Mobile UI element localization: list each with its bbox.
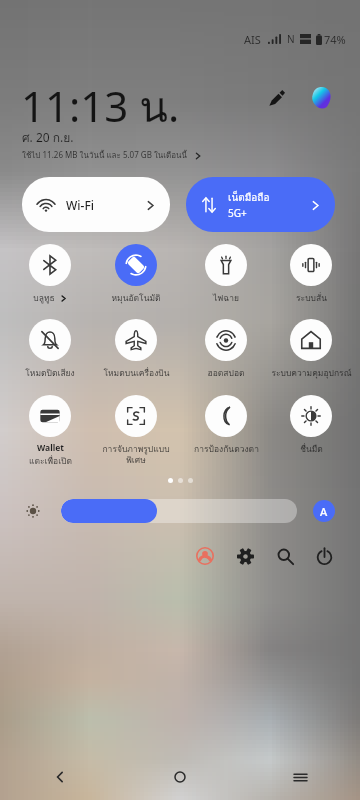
button[interactable]: เน็ตมือถือ	[186, 177, 335, 232]
staticText: AIS	[244, 32, 261, 47]
button[interactable]: A	[313, 500, 335, 522]
button[interactable]: Profile	[191, 542, 219, 570]
button[interactable]: Settings	[231, 542, 259, 570]
staticText: หมุนอัตโนมัติ	[111, 291, 161, 305]
button[interactable]	[271, 395, 351, 453]
button[interactable]	[10, 319, 90, 377]
button[interactable]: Recents	[240, 757, 360, 797]
staticText: N	[287, 32, 295, 46]
button[interactable]	[10, 244, 90, 302]
button[interactable]	[271, 244, 351, 302]
button[interactable]	[186, 244, 266, 302]
button[interactable]: Edit	[264, 86, 288, 110]
staticText: บลูทูธ	[33, 291, 55, 305]
staticText: ระบบสั่น	[296, 291, 327, 305]
staticText: เน็ตมือถือ	[228, 190, 270, 206]
button[interactable]: Home	[120, 757, 240, 797]
button[interactable]	[96, 244, 176, 302]
button[interactable]: Search	[271, 542, 299, 570]
staticText: โหมดบนเครื่องบิน	[103, 366, 170, 380]
staticText: ศ. 20 ก.ย.	[22, 128, 74, 147]
staticText: Wi-Fi	[66, 197, 94, 213]
button[interactable]	[61, 499, 297, 523]
button[interactable]: Wi-Fi	[22, 177, 170, 232]
staticText: ฮอตสปอต	[207, 366, 245, 380]
button[interactable]	[186, 395, 266, 453]
staticText: 74%	[324, 32, 346, 47]
staticText: A	[320, 504, 328, 519]
staticText: โหมดปิดเสียง	[25, 366, 75, 380]
staticText: 11:13 น.	[21, 74, 180, 141]
staticText: การจับภาพรูปแบบ พิเศษ	[102, 442, 170, 467]
button[interactable]	[271, 319, 351, 377]
staticText: แตะเพื่อเปิด	[29, 454, 72, 468]
staticText: ไฟฉาย	[213, 291, 239, 305]
button[interactable]: Profile	[310, 86, 334, 110]
staticText: ชื่นมืด	[300, 442, 323, 456]
button[interactable]: Back	[0, 757, 120, 797]
button[interactable]	[96, 319, 176, 377]
button[interactable]	[186, 319, 266, 377]
button[interactable]	[96, 395, 176, 453]
staticText: 5G+	[228, 206, 247, 220]
staticText: ระบบความคุมอุปกรณ์	[271, 366, 352, 380]
button[interactable]: Power	[310, 542, 338, 570]
staticText: Wallet	[37, 442, 64, 454]
staticText: การป้องกันดวงตา	[194, 442, 259, 456]
staticText: ใช้ไป 11.26 MB ในวันนี้ และ 5.07 GB ในเด…	[22, 149, 188, 162]
button[interactable]	[10, 395, 90, 453]
